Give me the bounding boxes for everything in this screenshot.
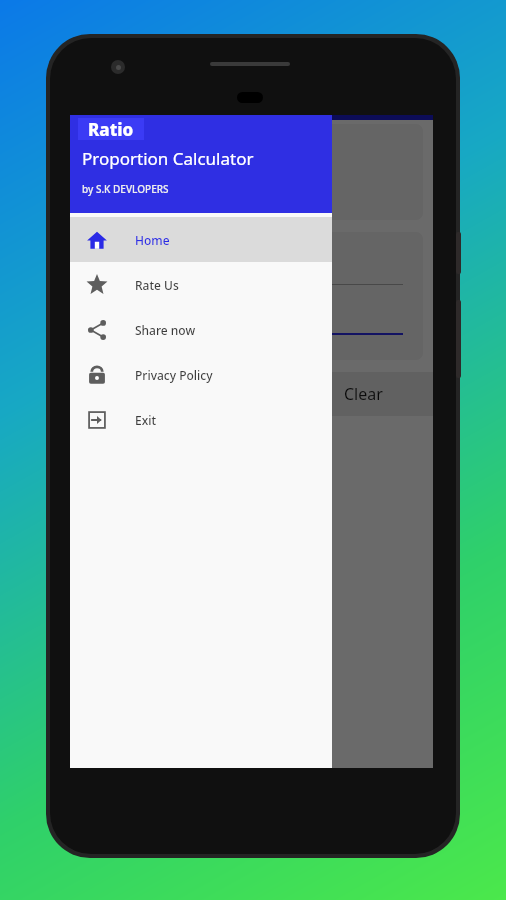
staticText: Home (135, 232, 170, 248)
staticText: Rate Us (135, 277, 179, 293)
staticText: Clear (344, 383, 383, 405)
staticText: Privacy Policy (135, 367, 213, 383)
staticText: Share now (135, 322, 196, 338)
staticText: Proportion Calculator (82, 147, 254, 170)
staticText: New Rate (100, 307, 167, 327)
button[interactable]: Exit (70, 397, 332, 442)
button[interactable]: Privacy Policy (70, 352, 332, 397)
staticText: Total Amount $ 500 (98, 138, 301, 164)
button[interactable]: Rate Us (70, 262, 332, 307)
button[interactable]: Home (70, 217, 332, 262)
staticText: by S.K DEVLOPERS (82, 182, 169, 196)
staticText: Ratio (88, 118, 134, 140)
staticText: Exit (135, 412, 157, 428)
staticText: Enter Rate (100, 258, 174, 278)
staticText: After Rate $ 625 (98, 188, 295, 214)
button[interactable]: Share now (70, 307, 332, 352)
